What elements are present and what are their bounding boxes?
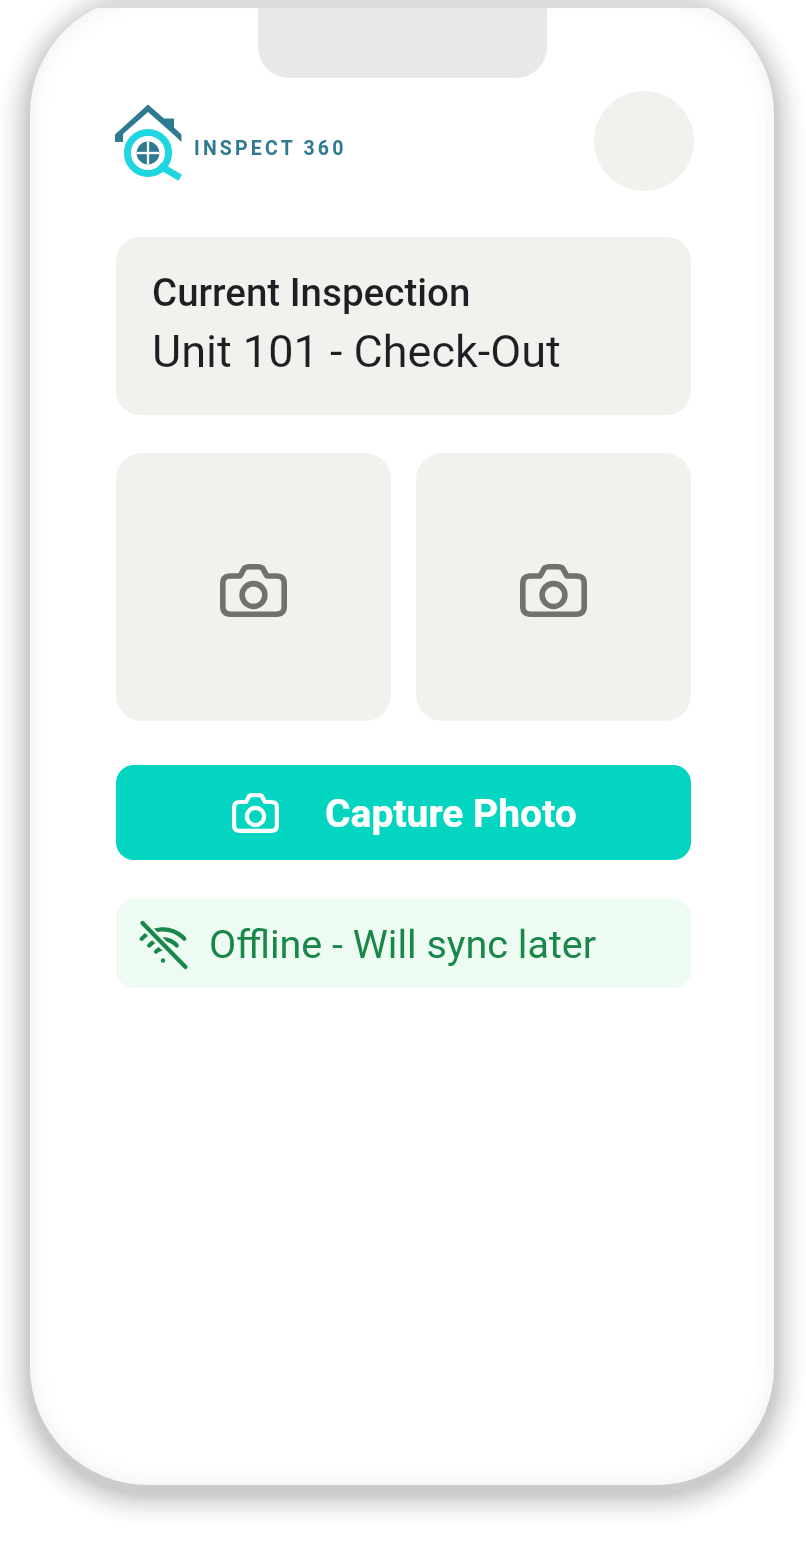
button[interactable]: Add photo bbox=[416, 453, 691, 721]
button[interactable]: Capture Photo bbox=[116, 765, 691, 860]
staticText: INSPECT 360 bbox=[194, 137, 347, 160]
button[interactable]: Add photo bbox=[116, 453, 391, 721]
button[interactable]: Profile bbox=[594, 91, 694, 191]
staticText: Unit 101 - Check-Out bbox=[152, 325, 561, 378]
staticText: Capture Photo bbox=[325, 791, 577, 837]
button[interactable]: Offline - Will sync later bbox=[116, 899, 691, 988]
staticText: Offline - Will sync later bbox=[209, 921, 597, 967]
button[interactable]: Current Inspection bbox=[116, 237, 691, 415]
button[interactable]: Inspect 360 home bbox=[113, 91, 344, 189]
staticText: Current Inspection bbox=[152, 270, 471, 315]
